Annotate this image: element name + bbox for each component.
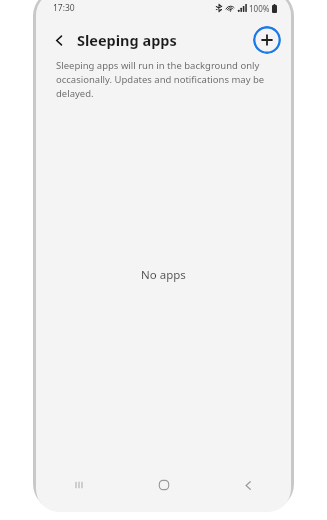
button[interactable]: Home	[121, 470, 206, 500]
button[interactable]: Back	[206, 470, 291, 500]
button[interactable]: Back	[48, 29, 70, 51]
staticText: 17:30	[53, 2, 75, 14]
button[interactable]: Add apps	[253, 26, 281, 54]
staticText: Sleeping apps	[77, 30, 177, 50]
staticText: No apps	[141, 267, 186, 283]
staticText: 100%	[249, 3, 270, 14]
staticText: Sleeping apps will run in the background…	[56, 59, 273, 100]
button[interactable]: Recents	[36, 470, 121, 500]
